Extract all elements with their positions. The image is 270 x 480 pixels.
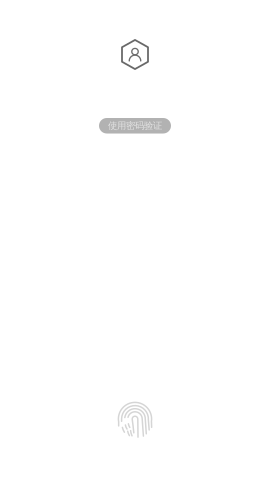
- staticText: 使用密码验证: [108, 120, 162, 131]
- button[interactable]: 使用密码验证: [99, 118, 171, 133]
- button[interactable]: Touch ID: [117, 402, 153, 439]
